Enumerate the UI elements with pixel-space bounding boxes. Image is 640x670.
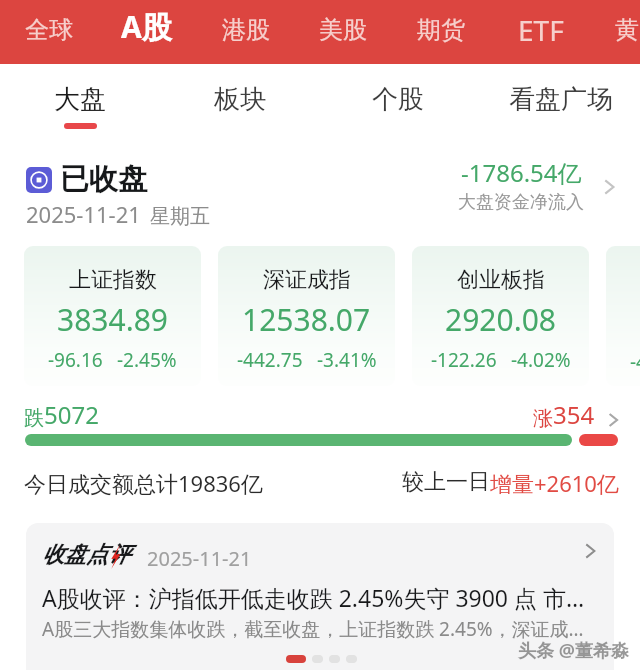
staticText: 大盘 xyxy=(54,83,106,116)
staticText: 港股 xyxy=(222,15,270,45)
staticText: 涨 xyxy=(533,406,553,431)
other: 资金流向详情 xyxy=(598,176,620,198)
button[interactable]: 全球 xyxy=(25,0,73,62)
staticText: -442.75 xyxy=(237,347,303,373)
staticText: 今日成交额总计19836亿 xyxy=(24,468,263,498)
button[interactable]: -1786.54亿 xyxy=(458,156,584,214)
other: 涨跌详情 xyxy=(603,410,623,430)
staticText: 增量+2610亿 xyxy=(490,468,619,498)
button[interactable]: 大盘 xyxy=(54,83,106,129)
staticText: 创业板指 xyxy=(457,266,545,294)
staticText: 全球 xyxy=(25,15,73,45)
staticText: 上证指数 xyxy=(69,266,157,294)
staticText: -122.26 xyxy=(431,347,497,373)
staticText: 收盘点评 xyxy=(42,541,130,569)
staticText: A股三大指数集体收跌，截至收盘，上证指数跌 2.45%，深证成… xyxy=(42,616,584,642)
button[interactable]: 收盘点评 xyxy=(26,523,614,670)
staticText: 2025-11-21 xyxy=(147,545,252,572)
staticText: 5072 xyxy=(44,398,99,431)
button[interactable]: 看盘广场 xyxy=(509,83,613,116)
button[interactable]: 已收盘 xyxy=(26,161,147,198)
button[interactable]: 港股 xyxy=(222,0,270,62)
staticText: 较上一日 xyxy=(402,468,490,496)
staticText: 星期五 xyxy=(150,204,210,229)
button[interactable]: 个股 xyxy=(372,83,424,116)
staticText: 354 xyxy=(553,398,595,431)
staticText: 2025-11-21 xyxy=(26,199,141,229)
button[interactable]: 美股 xyxy=(319,0,367,62)
button[interactable]: 涨 xyxy=(533,398,623,431)
staticText: 跌 xyxy=(24,406,44,431)
button[interactable]: 科创50 xyxy=(606,246,640,386)
staticText: 已收盘 xyxy=(60,161,147,198)
button[interactable]: 黄 xyxy=(615,0,639,62)
staticText: 3834.89 xyxy=(57,299,168,340)
staticText: 个股 xyxy=(372,83,424,116)
staticText: 看盘广场 xyxy=(509,83,613,116)
button[interactable]: 跌 xyxy=(24,398,99,431)
staticText: A股 xyxy=(121,6,172,47)
other: 查看详情 xyxy=(579,540,601,562)
staticText: 大盘资金净流入 xyxy=(458,191,584,214)
button[interactable]: 创业板指 xyxy=(412,246,589,386)
staticText: A股收评：沪指低开低走收跌 2.45%失守 3900 点 市… xyxy=(42,582,585,613)
staticText: ETF xyxy=(518,11,564,49)
staticText: -4.02% xyxy=(511,347,571,373)
staticText: 2920.08 xyxy=(445,299,556,340)
staticText: 美股 xyxy=(319,15,367,45)
staticText: -1786.54亿 xyxy=(461,156,582,189)
staticText: -42.15 xyxy=(630,349,640,375)
staticText: -2.45% xyxy=(117,347,177,373)
button[interactable]: 板块 xyxy=(214,83,266,116)
staticText: 期货 xyxy=(417,15,465,45)
staticText: 板块 xyxy=(214,83,266,116)
staticText: 头条 @董希淼 xyxy=(518,638,629,663)
staticText: 深证成指 xyxy=(263,266,351,294)
staticText: -96.16 xyxy=(48,347,103,373)
button[interactable]: A股 xyxy=(121,0,172,58)
staticText: 黄 xyxy=(615,15,639,45)
staticText: 12538.07 xyxy=(242,299,371,340)
staticText: -3.41% xyxy=(317,347,377,373)
button[interactable]: 深证成指 xyxy=(218,246,395,386)
button[interactable]: 上证指数 xyxy=(24,246,201,386)
button[interactable]: 期货 xyxy=(417,0,465,62)
button[interactable]: ETF xyxy=(518,0,564,62)
